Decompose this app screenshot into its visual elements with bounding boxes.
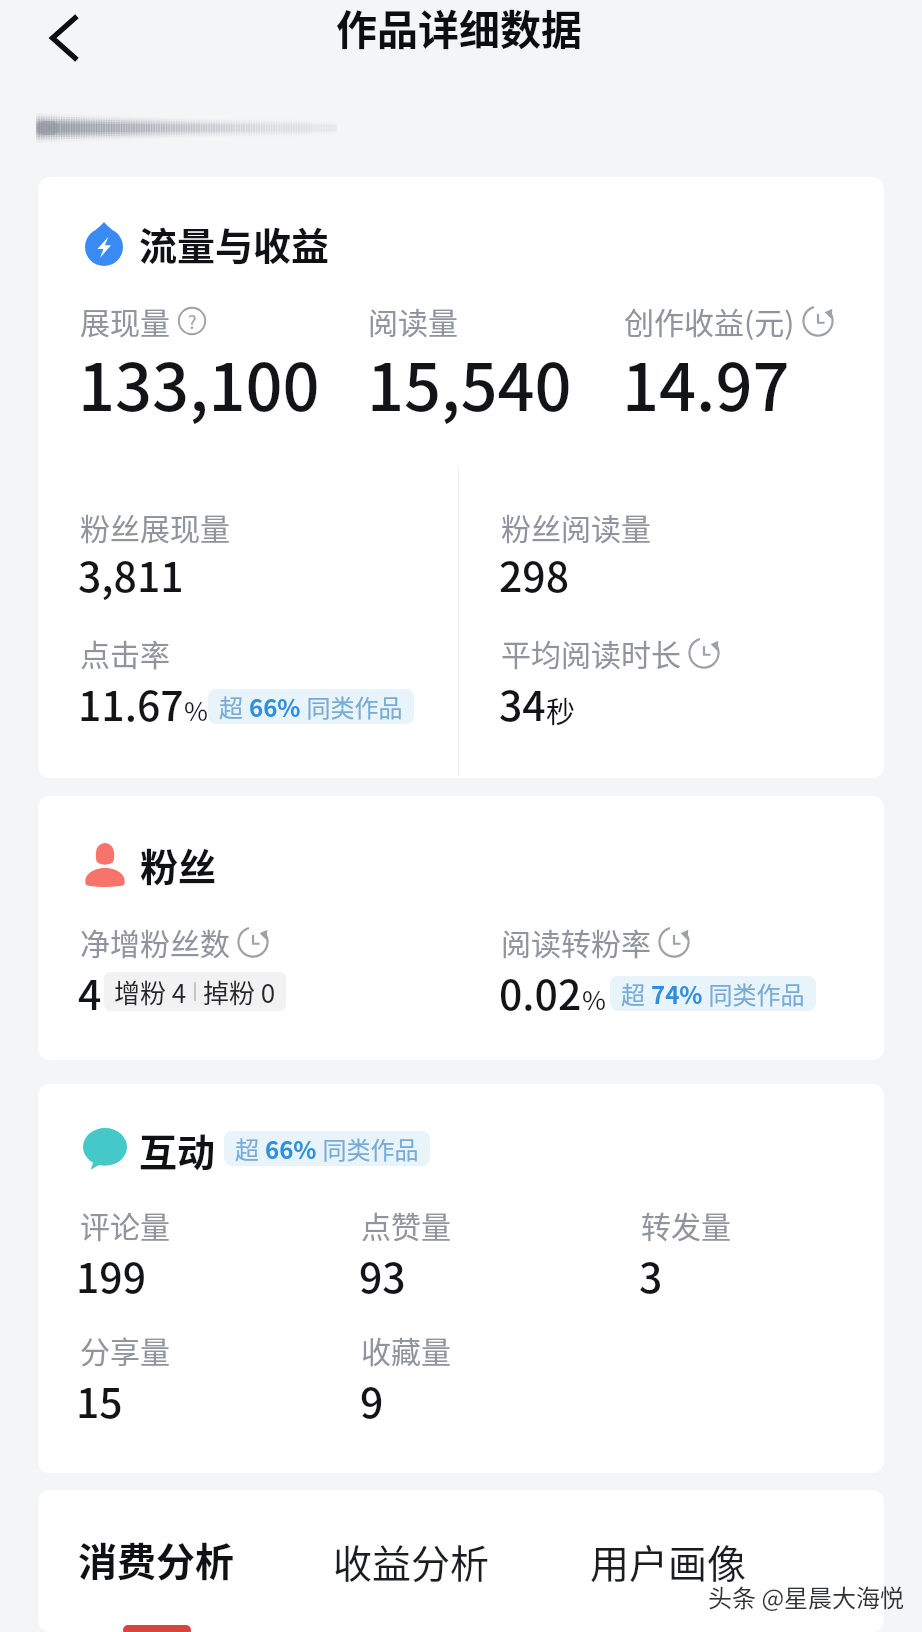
- staticText: 收藏量: [361, 1328, 451, 1371]
- staticText: 秒: [546, 689, 576, 731]
- button[interactable]: Back: [26, 0, 102, 76]
- staticText: %: [184, 691, 208, 729]
- button[interactable]: 消费分析: [78, 1531, 235, 1632]
- button[interactable]: 超: [224, 1131, 430, 1166]
- staticText: 9: [360, 1370, 384, 1429]
- staticText: 133,100: [78, 336, 320, 430]
- button[interactable]: 收益分析: [333, 1533, 490, 1589]
- staticText: 头条 @星晨大海悦: [708, 1579, 905, 1614]
- staticText: 评论量: [80, 1203, 170, 1246]
- staticText: 粉丝阅读量: [501, 505, 651, 548]
- staticText: 作品详细数据: [336, 0, 582, 56]
- staticText: 掉粉 0: [203, 973, 276, 1011]
- button[interactable]: 用户画像: [590, 1533, 747, 1589]
- staticText: 粉丝展现量: [80, 505, 230, 548]
- staticText: 66%: [265, 1131, 317, 1166]
- button[interactable]: 超: [610, 976, 816, 1011]
- staticText: 同类作品: [317, 1131, 419, 1166]
- staticText: 298: [499, 544, 570, 603]
- staticText: 展现量: [80, 299, 170, 342]
- staticText: 14.97: [622, 336, 790, 430]
- staticText: 创作收益(元): [624, 299, 795, 342]
- staticText: 74%: [651, 976, 703, 1011]
- staticText: 4: [78, 962, 102, 1021]
- staticText: 点击率: [80, 631, 170, 674]
- staticText: 转发量: [641, 1203, 731, 1246]
- staticText: 阅读转粉率: [501, 920, 651, 963]
- staticText: 3,811: [78, 544, 184, 603]
- staticText: 超: [235, 1131, 265, 1166]
- staticText: 199: [76, 1245, 147, 1304]
- staticText: 超: [621, 976, 651, 1011]
- staticText: 3: [639, 1245, 663, 1304]
- button[interactable]: 超: [208, 689, 414, 724]
- staticText: 增粉 4: [114, 973, 187, 1011]
- staticText: 分享量: [80, 1328, 170, 1371]
- staticText: 11.67: [78, 673, 184, 732]
- staticText: 平均阅读时长: [501, 631, 681, 674]
- staticText: 同类作品: [301, 689, 403, 724]
- staticText: 消费分析: [78, 1531, 235, 1587]
- staticText: 同类作品: [703, 976, 805, 1011]
- staticText: 34: [499, 673, 546, 732]
- staticText: 粉丝: [140, 837, 217, 892]
- staticText: 93: [359, 1245, 406, 1304]
- staticText: 66%: [249, 689, 301, 724]
- staticText: 互动: [139, 1122, 216, 1177]
- staticText: %: [582, 980, 606, 1018]
- staticText: 15,540: [367, 336, 572, 430]
- staticText: 阅读量: [368, 299, 458, 342]
- staticText: 15: [76, 1370, 123, 1429]
- staticText: 点赞量: [361, 1203, 451, 1246]
- staticText: 超: [219, 689, 249, 724]
- staticText: 0.02: [499, 962, 582, 1021]
- staticText: 净增粉丝数: [80, 920, 230, 963]
- staticText: 流量与收益: [139, 216, 330, 271]
- staticText: ?: [188, 308, 197, 334]
